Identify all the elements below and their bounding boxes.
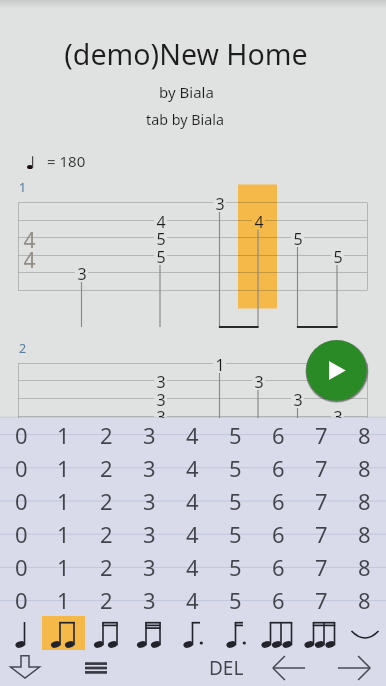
button[interactable]: 0 xyxy=(0,484,42,517)
staticText: 7 xyxy=(315,420,328,450)
staticText: 7 xyxy=(315,486,328,516)
button[interactable]: 4 xyxy=(171,451,214,484)
button[interactable]: Move down xyxy=(7,653,43,681)
staticText: 3 xyxy=(143,585,156,615)
staticText: 4 xyxy=(186,519,199,549)
button[interactable]: 4 xyxy=(171,517,214,550)
staticText: 5 xyxy=(156,246,166,265)
button[interactable]: 6 xyxy=(257,583,300,616)
button[interactable]: 4 xyxy=(171,418,214,451)
button[interactable]: 4 xyxy=(171,484,214,517)
button[interactable]: 2 xyxy=(85,418,128,451)
button[interactable]: 8 xyxy=(343,451,386,484)
staticText: 7 xyxy=(315,585,328,615)
button[interactable]: 0 xyxy=(0,583,42,616)
staticText: = 180 xyxy=(47,151,86,171)
button[interactable]: Previous xyxy=(269,654,309,682)
button[interactable]: 1 xyxy=(42,583,85,616)
button[interactable]: 6 xyxy=(257,484,300,517)
button[interactable]: 7 xyxy=(300,517,343,550)
button[interactable]: 2 xyxy=(85,484,128,517)
staticText: 2 xyxy=(100,486,113,516)
button[interactable]: 4 xyxy=(171,550,214,583)
button[interactable]: Quarter note xyxy=(0,616,42,650)
button[interactable]: 3 xyxy=(128,517,171,550)
button[interactable]: 6 xyxy=(257,451,300,484)
button[interactable]: 2 xyxy=(85,517,128,550)
button[interactable]: 7 xyxy=(300,451,343,484)
staticText: 3 xyxy=(215,193,225,212)
button[interactable]: 3 xyxy=(128,484,171,517)
staticText: 7 xyxy=(315,453,328,483)
button[interactable]: 0 xyxy=(0,451,42,484)
staticText: 1 xyxy=(19,179,27,196)
button[interactable]: 2 xyxy=(85,583,128,616)
button[interactable]: 0 xyxy=(0,550,42,583)
button[interactable]: 0 xyxy=(0,517,42,550)
button[interactable]: 6 xyxy=(257,418,300,451)
staticText: 1 xyxy=(57,420,70,450)
staticText: 3 xyxy=(293,389,303,408)
button[interactable]: 8 xyxy=(343,517,386,550)
button[interactable]: Eighth notes xyxy=(42,616,85,650)
button[interactable]: 5 xyxy=(214,418,257,451)
staticText: 4 xyxy=(156,211,166,230)
button[interactable]: 6 xyxy=(257,550,300,583)
button[interactable]: 1 xyxy=(42,517,85,550)
button[interactable]: Sixteenth triplet xyxy=(300,616,343,650)
staticText: 2 xyxy=(100,552,113,582)
staticText: 3 xyxy=(143,519,156,549)
button[interactable]: Sixteenth notes xyxy=(85,616,128,650)
staticText: 3 xyxy=(143,486,156,516)
button[interactable]: 8 xyxy=(343,484,386,517)
button[interactable]: 6 xyxy=(257,517,300,550)
button[interactable]: 3 xyxy=(128,550,171,583)
staticText: 5 xyxy=(229,420,242,450)
staticText: 3 xyxy=(333,406,343,425)
staticText: by Biala xyxy=(159,82,214,102)
button[interactable]: 2 xyxy=(85,550,128,583)
button[interactable]: 5 xyxy=(214,517,257,550)
staticText: 3 xyxy=(143,453,156,483)
button[interactable]: 1 xyxy=(42,451,85,484)
button[interactable]: 7 xyxy=(300,484,343,517)
button[interactable]: 8 xyxy=(343,583,386,616)
button[interactable]: Play xyxy=(304,338,369,403)
staticText: 6 xyxy=(272,552,285,582)
button[interactable]: Menu xyxy=(81,657,111,679)
button[interactable]: 5 xyxy=(214,583,257,616)
button[interactable]: Next xyxy=(334,654,374,682)
button[interactable]: 1 xyxy=(42,484,85,517)
button[interactable]: 3 xyxy=(128,451,171,484)
button[interactable]: Dotted sixteenth xyxy=(214,616,257,650)
button[interactable]: Thirty-second notes xyxy=(128,616,171,650)
button[interactable]: 8 xyxy=(343,418,386,451)
button[interactable]: 1 xyxy=(42,418,85,451)
button[interactable]: 8 xyxy=(343,550,386,583)
button[interactable]: 7 xyxy=(300,418,343,451)
staticText: 0 xyxy=(15,519,28,549)
button[interactable]: 7 xyxy=(300,583,343,616)
button[interactable]: 7 xyxy=(300,550,343,583)
staticText: 3 xyxy=(143,552,156,582)
staticText: 1 xyxy=(57,585,70,615)
button[interactable]: 5 xyxy=(214,451,257,484)
button[interactable]: 2 xyxy=(85,451,128,484)
staticText: 8 xyxy=(358,420,371,450)
staticText: 4 xyxy=(186,453,199,483)
button[interactable]: 0 xyxy=(0,418,42,451)
button[interactable]: DEL xyxy=(197,654,255,682)
staticText: 4 xyxy=(23,226,36,251)
button[interactable]: 5 xyxy=(214,550,257,583)
staticText: 7 xyxy=(315,552,328,582)
button[interactable]: Dotted eighth xyxy=(171,616,214,650)
button[interactable]: Eighth triplet xyxy=(257,616,300,650)
button[interactable]: 1 xyxy=(42,550,85,583)
button[interactable]: 3 xyxy=(128,418,171,451)
staticText: 8 xyxy=(358,552,371,582)
button[interactable]: Tie xyxy=(343,616,386,650)
button[interactable]: 3 xyxy=(128,583,171,616)
staticText: 5 xyxy=(229,585,242,615)
button[interactable]: 5 xyxy=(214,484,257,517)
button[interactable]: 4 xyxy=(171,583,214,616)
